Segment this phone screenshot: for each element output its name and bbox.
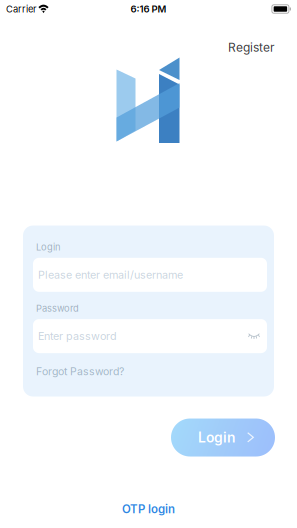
staticText: Please enter email/username <box>38 268 183 281</box>
button[interactable]: OTP login <box>112 496 185 522</box>
staticText: Password <box>36 303 79 314</box>
staticText: Forgot Password? <box>36 365 124 378</box>
button[interactable]: Show password <box>247 329 261 343</box>
staticText: Login <box>36 241 61 253</box>
staticText: Enter password <box>38 330 117 343</box>
staticText: OTP login <box>122 502 175 516</box>
button[interactable]: Register <box>224 36 279 58</box>
button[interactable]: Login <box>171 418 275 456</box>
staticText: 6:16 PM <box>130 3 166 15</box>
staticText: Login <box>198 429 235 446</box>
button[interactable]: Forgot Password? <box>33 361 124 382</box>
staticText: Carrier <box>6 3 37 15</box>
staticText: Register <box>228 40 275 54</box>
